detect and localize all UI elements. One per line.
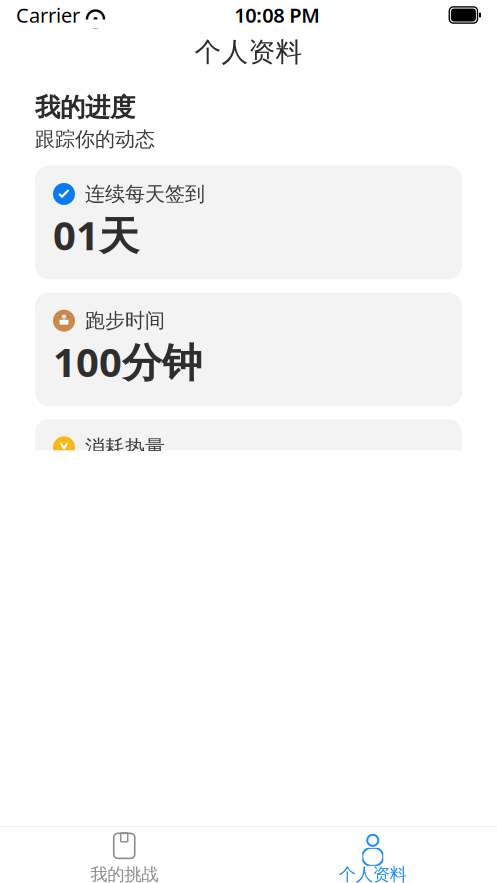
staticText: 我的进度 (35, 92, 135, 123)
staticText: 跑步时间 (85, 308, 165, 333)
staticText: Carrier (16, 2, 80, 28)
button[interactable]: 连续每天签到 (35, 166, 462, 279)
staticText: 01天 (53, 208, 139, 261)
button[interactable]: 跑步时间 (35, 292, 462, 406)
button[interactable]: 我的挑战 (0, 825, 248, 883)
staticText: 我的挑战 (90, 864, 158, 883)
staticText: 10:08 PM (234, 2, 320, 28)
staticText: 消耗热量 (85, 435, 165, 460)
staticText: 个人资料 (194, 36, 302, 68)
staticText: 跟踪你的动态 (35, 127, 155, 152)
button[interactable]: 个人资料 (248, 825, 497, 883)
staticText: 100分钟 (53, 335, 202, 388)
staticText: 个人资料 (339, 864, 407, 883)
button[interactable]: 消耗热量 (35, 419, 462, 533)
staticText: 连续每天签到 (85, 182, 205, 206)
